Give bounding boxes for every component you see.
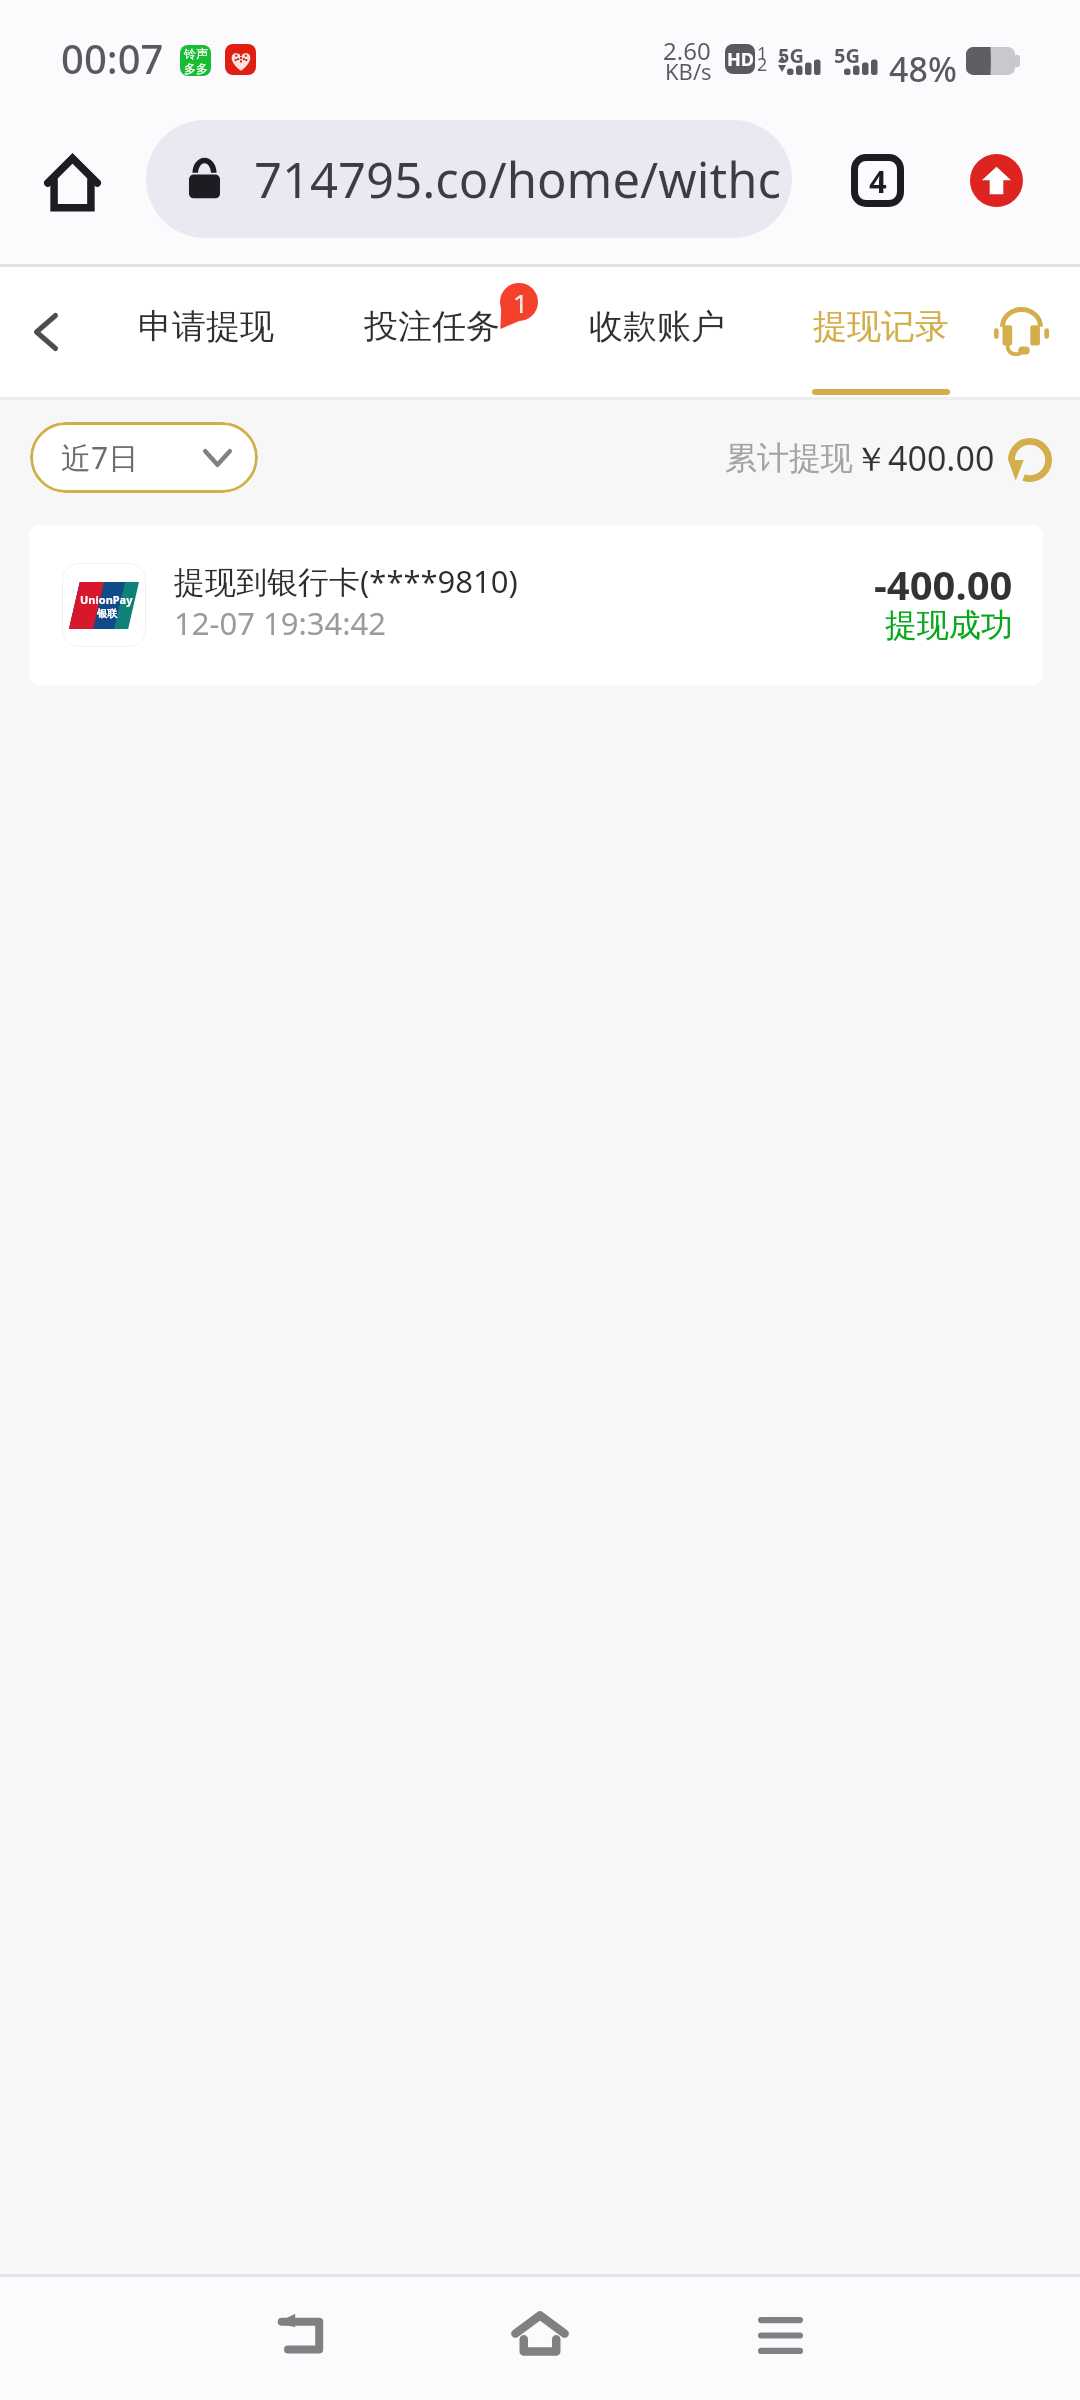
staticText: -400.00 xyxy=(874,557,1013,611)
staticText: 近7日 xyxy=(61,437,139,478)
button[interactable]: 近7日 xyxy=(30,422,258,493)
staticText: 申请提现 xyxy=(138,305,274,348)
button[interactable]: UnionPay xyxy=(29,525,1043,685)
staticText: 1 xyxy=(757,41,768,66)
staticText: 多多 xyxy=(184,61,208,76)
staticText: 投注任务 xyxy=(364,305,500,348)
staticText: 收款账户 xyxy=(589,305,725,348)
staticText: 714795.co/home/withc xyxy=(254,146,781,213)
button[interactable]: 收款账户 xyxy=(569,267,745,397)
button[interactable]: 714795.co/home/withc xyxy=(146,120,792,238)
staticText: 48% xyxy=(889,46,957,92)
button[interactable]: Customer service xyxy=(985,267,1057,397)
button[interactable]: Home xyxy=(27,138,117,228)
staticText: KB/s xyxy=(665,56,712,86)
button[interactable]: Home xyxy=(480,2272,600,2395)
button[interactable]: Back xyxy=(0,267,92,397)
staticText: 5G xyxy=(778,42,804,69)
staticText: 铃声 xyxy=(184,46,208,61)
staticText: UnionPay xyxy=(80,592,133,607)
staticText: ￥400.00 xyxy=(854,435,995,481)
staticText: 提现记录 xyxy=(813,305,949,348)
staticText: 提现到银行卡(****9810) xyxy=(174,560,518,602)
staticText: 2.60 xyxy=(663,34,711,67)
button[interactable]: Refresh xyxy=(1002,432,1058,488)
button[interactable]: Tabs xyxy=(832,135,922,225)
staticText: 12-07 19:34:42 xyxy=(174,602,386,644)
staticText: 00:07 xyxy=(61,31,164,85)
button[interactable]: Back xyxy=(240,2272,360,2395)
staticText: 银联 xyxy=(97,607,117,620)
staticText: 4 xyxy=(869,160,887,202)
button[interactable]: 申请提现 xyxy=(118,267,294,397)
button[interactable]: Update xyxy=(970,154,1023,207)
staticText: 提现成功 xyxy=(885,605,1013,645)
staticText: 累计提现 xyxy=(725,438,853,478)
button[interactable]: 提现记录 xyxy=(793,267,969,397)
staticText: 2 xyxy=(757,52,768,77)
button[interactable]: Menu xyxy=(720,2274,840,2397)
staticText: 1 xyxy=(513,285,528,320)
staticText: HD xyxy=(727,47,754,72)
button[interactable]: 投注任务 xyxy=(344,267,520,397)
staticText: 5G xyxy=(834,42,860,69)
